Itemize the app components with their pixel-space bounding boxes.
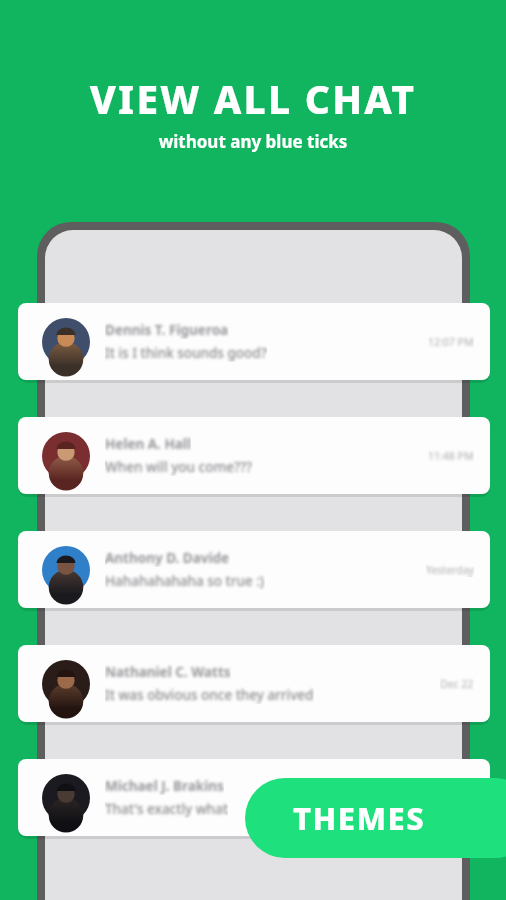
- staticText: Dec 22: [440, 677, 474, 691]
- staticText: Dennis T. Figueroa: [105, 321, 229, 339]
- button[interactable]: Dennis T. Figueroa: [18, 303, 490, 380]
- button[interactable]: THEMES: [245, 778, 506, 858]
- button[interactable]: Anthony D. Davide: [18, 531, 490, 608]
- staticText: When will you come???: [105, 458, 253, 476]
- staticText: without any blue ticks: [0, 130, 506, 153]
- staticText: It was obvious once they arrived: [105, 686, 314, 704]
- staticText: 12:07 PM: [428, 335, 474, 349]
- staticText: THEMES: [293, 797, 426, 839]
- staticText: Michael J. Brakins: [105, 777, 224, 795]
- staticText: Hahahahahaha so true :): [105, 572, 265, 590]
- button[interactable]: Michael J. Brakins: [18, 759, 490, 836]
- staticText: Anthony D. Davide: [105, 549, 230, 567]
- staticText: VIEW ALL CHAT: [0, 72, 506, 125]
- staticText: That's exactly what: [105, 800, 228, 818]
- button[interactable]: Helen A. Hall: [18, 417, 490, 494]
- staticText: Helen A. Hall: [105, 435, 191, 453]
- staticText: Yesterday: [426, 563, 474, 577]
- staticText: It is I think sounds good?: [105, 344, 267, 362]
- staticText: Nathaniel C. Watts: [105, 663, 231, 681]
- button[interactable]: Nathaniel C. Watts: [18, 645, 490, 722]
- staticText: 11:48 PM: [428, 449, 474, 463]
